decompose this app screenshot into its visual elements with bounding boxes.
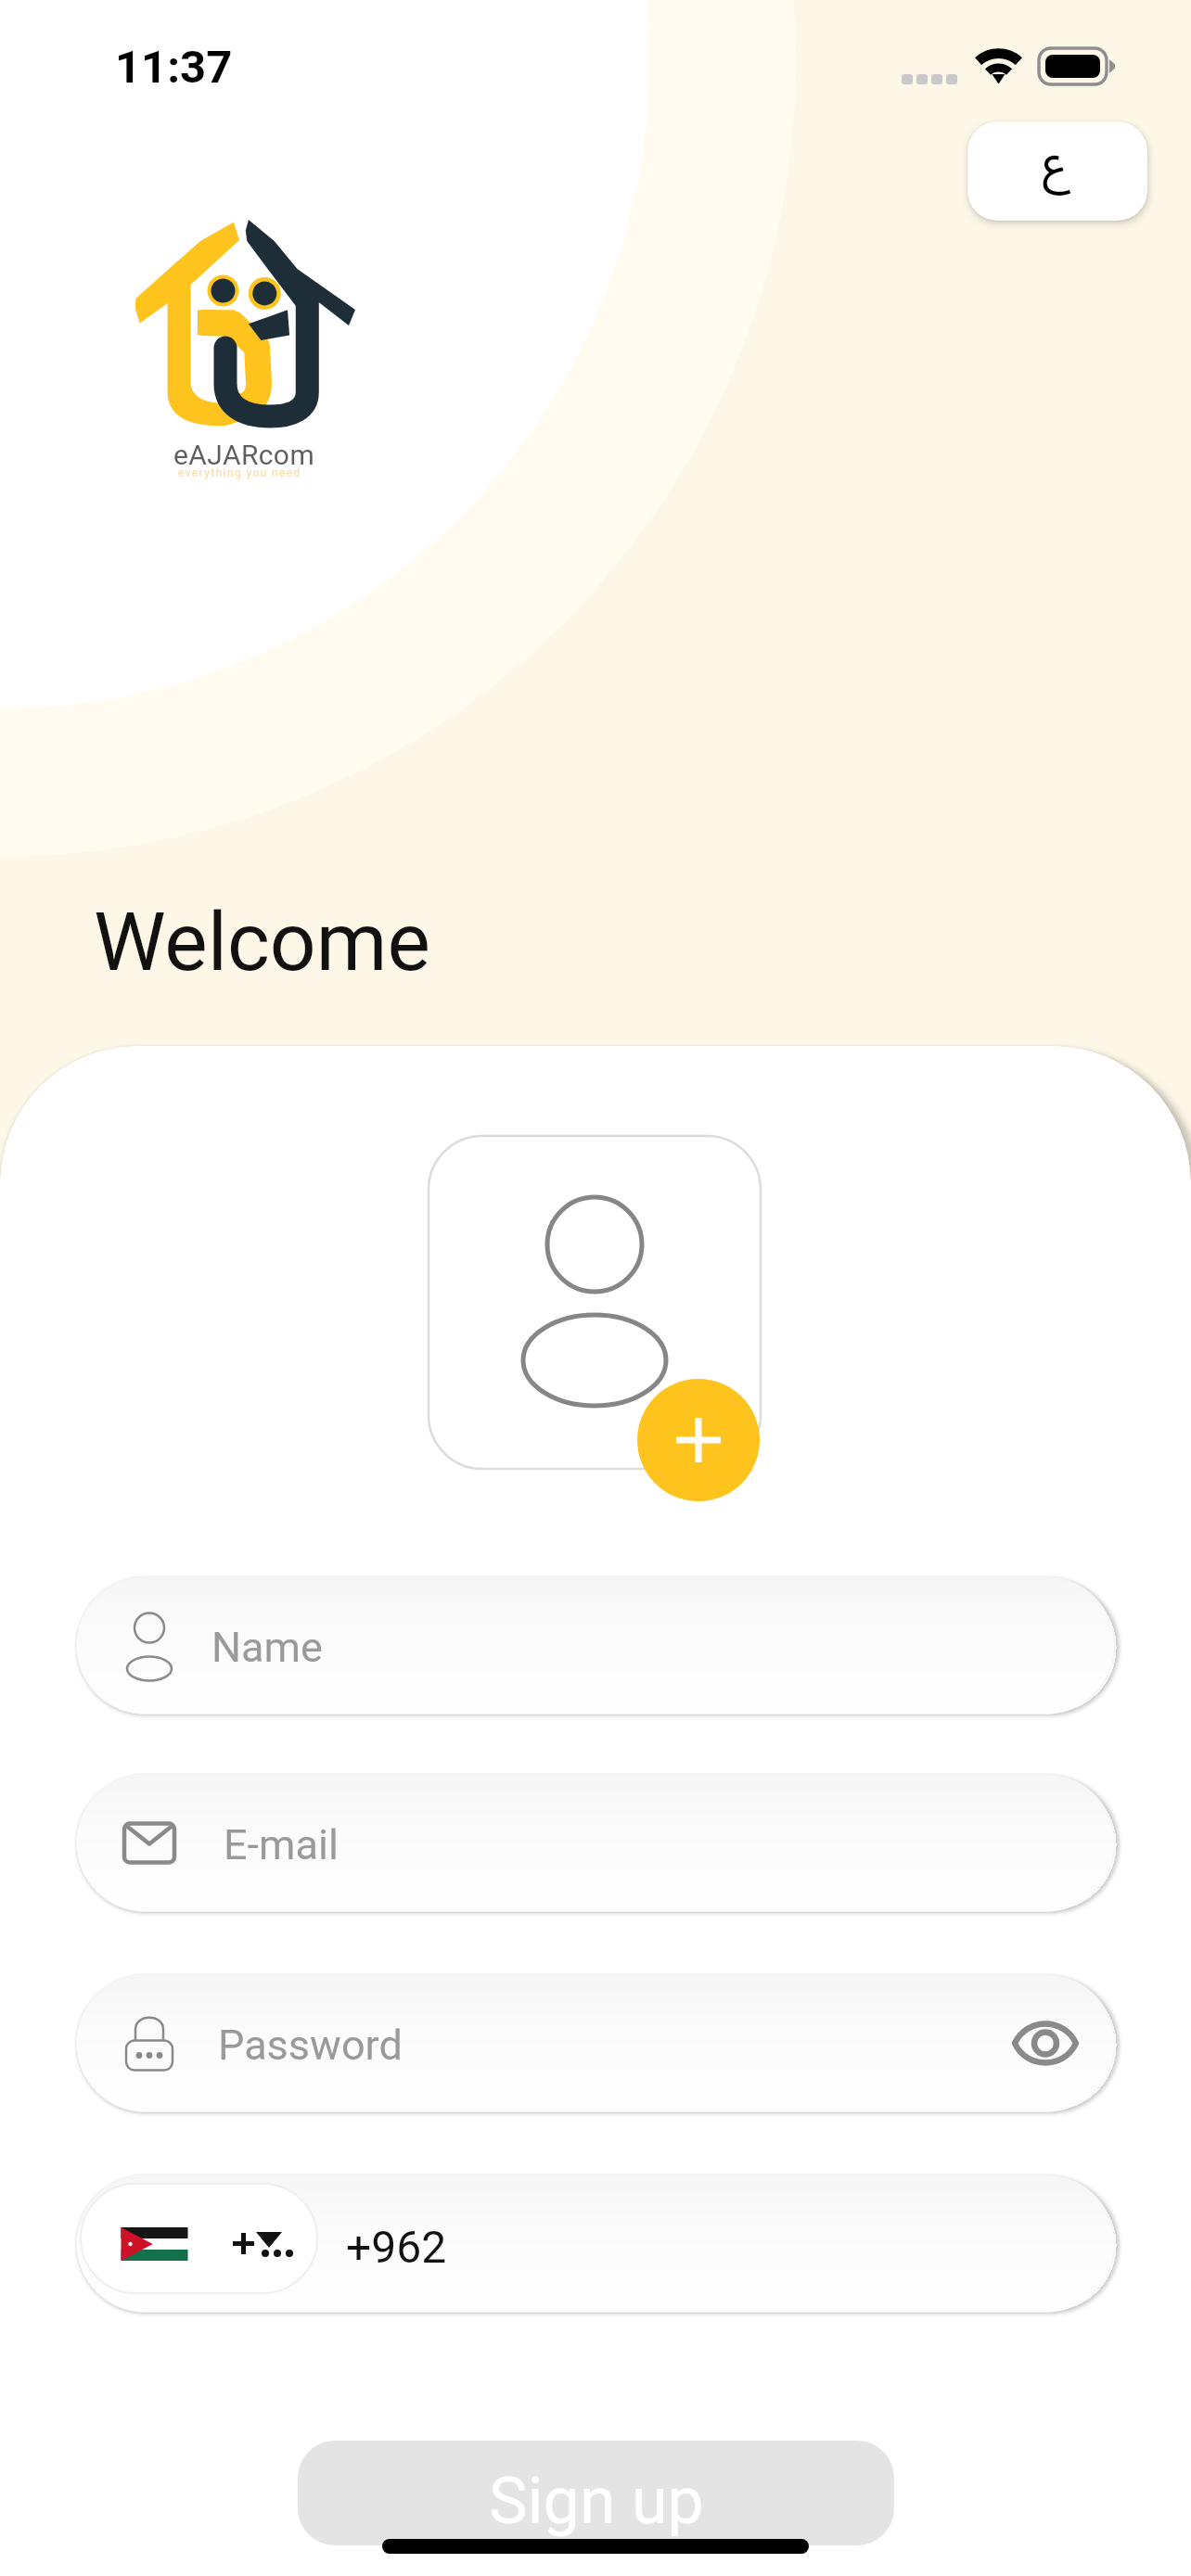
button[interactable]: Add photo [637,1379,760,1501]
button[interactable]: +962 [76,2174,1115,2313]
button[interactable]: Add profile photo [429,1136,761,1469]
staticText: Sign up [489,2463,704,2539]
staticText: everything you need [178,466,301,479]
staticText: +962 [346,2221,447,2273]
button[interactable]: Name [76,1576,1115,1715]
staticText: Welcome [94,895,430,990]
staticText: E-mail [224,1820,339,1869]
button[interactable]: E-mail [76,1774,1115,1912]
button[interactable]: Show password [1003,2000,1088,2085]
staticText: ع [1043,131,1072,198]
button[interactable]: Password [76,1974,1115,2112]
button[interactable]: Switch language to Arabic [967,121,1147,221]
staticText: 11:37 [115,41,233,94]
staticText: Password [218,2021,403,2070]
staticText: Name [211,1623,323,1672]
button[interactable]: Sign up [298,2441,894,2545]
staticText: eAJARcom [173,439,315,471]
